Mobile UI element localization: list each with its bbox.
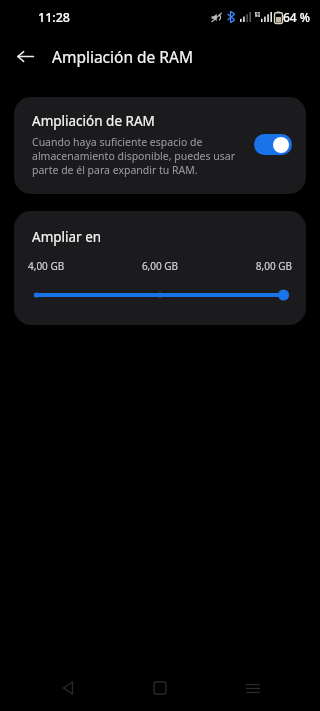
button[interactable]: Inicio [135,665,185,711]
button[interactable]: Atrás [43,665,93,711]
staticText: 8,00 GB [204,259,292,273]
staticText: Ampliación de RAM [52,46,193,67]
staticText: 64 % [283,9,311,25]
staticText: Cuando haya suficiente espacio de almace… [32,135,242,177]
button[interactable]: Atrás [9,40,41,72]
staticText: 11:28 [38,9,71,26]
staticText: Ampliación de RAM [32,112,155,130]
staticText: 4,00 GB [28,259,116,273]
staticText: 6,00 GB [116,259,204,273]
button[interactable]: Ampliación de RAM [14,97,306,194]
button[interactable]: Selector de tamaño de ampliación [28,285,292,305]
button[interactable]: Recientes [228,665,278,711]
button[interactable]: Activar ampliación de RAM [254,134,292,155]
staticText: Ampliar en [32,228,102,246]
